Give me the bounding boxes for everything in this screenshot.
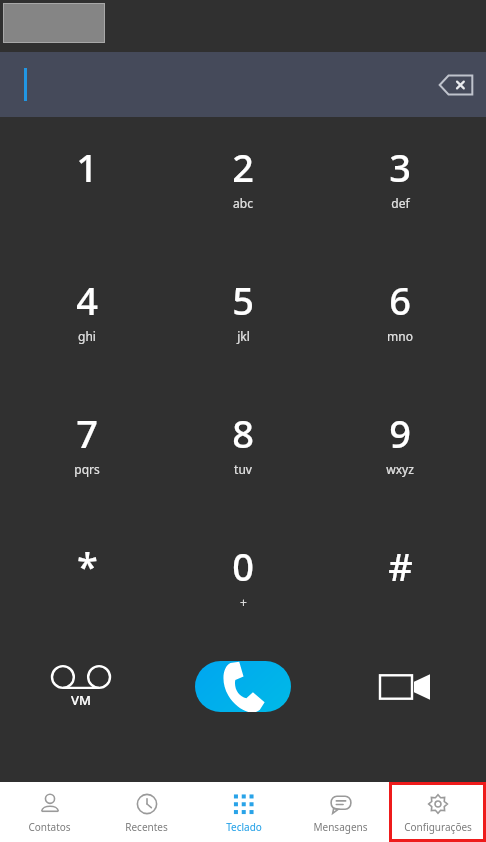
button[interactable]: 1 (17, 129, 157, 262)
staticText: + (240, 594, 247, 610)
staticText: Configurações (404, 820, 472, 834)
staticText: ghi (78, 328, 96, 344)
staticText: 0 (232, 540, 254, 592)
button[interactable]: Mensagens (292, 782, 389, 842)
staticText: 3 (389, 141, 411, 193)
button[interactable]: Teclado (195, 782, 292, 842)
staticText: 8 (232, 407, 254, 459)
button[interactable]: Configurações (389, 782, 486, 842)
button[interactable]: Call (195, 661, 291, 712)
staticText: 6 (389, 274, 411, 326)
staticText: wxyz (386, 461, 414, 477)
button[interactable]: 6 (330, 262, 470, 395)
staticText: pqrs (74, 461, 100, 477)
staticText: jkl (237, 328, 250, 344)
button[interactable]: Voicemail (0, 661, 162, 712)
button[interactable]: 2 (173, 129, 313, 262)
button[interactable]: Video call (324, 661, 486, 712)
button[interactable]: 7 (17, 395, 157, 528)
button[interactable]: 0 (173, 528, 313, 661)
button[interactable]: Contatos (0, 782, 98, 842)
staticText: # (388, 540, 413, 592)
staticText: abc (233, 195, 253, 211)
button[interactable]: Backspace (0, 52, 486, 117)
button[interactable]: 9 (330, 395, 470, 528)
staticText: def (391, 195, 410, 211)
button[interactable]: 3 (330, 129, 470, 262)
button[interactable]: Backspace (437, 66, 475, 104)
button[interactable]: 5 (173, 262, 313, 395)
staticText: 4 (76, 274, 98, 326)
staticText: VM (71, 691, 91, 709)
button[interactable]: 8 (173, 395, 313, 528)
staticText: Contatos (28, 820, 71, 834)
staticText: Recentes (125, 820, 168, 834)
staticText: tuv (234, 461, 252, 477)
button[interactable]: # (330, 528, 470, 661)
staticText: 5 (232, 274, 254, 326)
staticText: Teclado (226, 820, 262, 834)
button[interactable]: * (17, 528, 157, 661)
button[interactable]: Recentes (98, 782, 195, 842)
staticText: 7 (76, 407, 98, 459)
staticText: 2 (232, 141, 254, 193)
staticText: * (77, 540, 98, 592)
staticText: mno (387, 328, 413, 344)
staticText: Mensagens (313, 820, 368, 834)
staticText: 1 (76, 141, 98, 193)
button[interactable]: 4 (17, 262, 157, 395)
staticText: 9 (389, 407, 411, 459)
